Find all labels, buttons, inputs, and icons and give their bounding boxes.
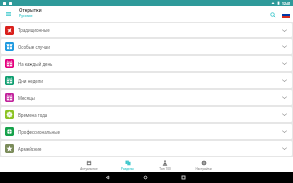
button[interactable]: Search	[266, 8, 279, 21]
staticText: Дни недели	[18, 78, 280, 84]
staticText: Особые случаи	[18, 44, 280, 50]
button[interactable]: Актуальное	[70, 157, 108, 172]
staticText: Актуальное	[80, 167, 98, 171]
staticText: Открытки	[19, 7, 42, 13]
staticText: Времена года	[18, 112, 280, 118]
staticText: Настройки	[195, 167, 212, 171]
button[interactable]: Back	[95, 172, 119, 183]
staticText: Традиционные	[18, 27, 280, 33]
staticText: Месяцы	[18, 95, 280, 101]
button[interactable]: Традиционные	[1, 23, 292, 37]
button[interactable]: Времена года	[1, 107, 292, 122]
staticText: Топ 100	[159, 167, 171, 171]
button[interactable]: Топ 100	[146, 157, 184, 172]
button[interactable]: Настройки	[184, 157, 222, 172]
staticText: Профессиональные	[18, 129, 280, 135]
button[interactable]: На каждый день	[1, 56, 292, 71]
button[interactable]: Месяцы	[1, 90, 292, 105]
staticText: Русские	[19, 13, 33, 18]
button[interactable]: Разделы	[108, 157, 146, 172]
staticText: Армейские	[18, 146, 280, 152]
button[interactable]: Recent apps	[171, 172, 195, 183]
button[interactable]: Home	[133, 172, 157, 183]
button[interactable]: Change language	[279, 8, 292, 21]
button[interactable]: Open navigation menu	[0, 6, 16, 22]
staticText: 12:41	[282, 1, 291, 6]
staticText: На каждый день	[18, 61, 280, 67]
button[interactable]: Особые случаи	[1, 39, 292, 54]
button[interactable]: Дни недели	[1, 73, 292, 88]
staticText: Разделы	[121, 167, 134, 171]
button[interactable]: Армейские	[1, 141, 292, 156]
button[interactable]: Профессиональные	[1, 124, 292, 139]
